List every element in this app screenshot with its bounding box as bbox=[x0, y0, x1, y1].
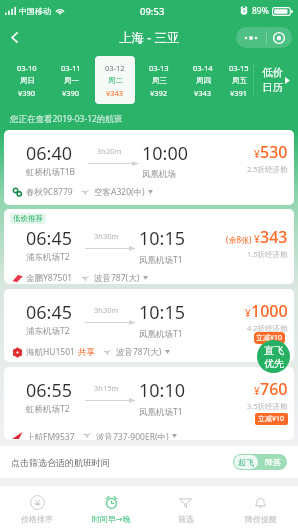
button[interactable]: 低价推荐 bbox=[4, 209, 294, 284]
staticText: 06:40 bbox=[26, 141, 73, 166]
staticText: 降落 bbox=[265, 457, 281, 467]
staticText: 凤凰机场T1 bbox=[139, 406, 183, 418]
staticText: 浦东机场T2 bbox=[26, 325, 70, 337]
staticText: 03-11 bbox=[61, 63, 81, 73]
staticText: (余8张) bbox=[226, 234, 252, 245]
staticText: ¥ bbox=[254, 384, 260, 398]
staticText: 优先 bbox=[264, 357, 284, 370]
staticText: 日历 bbox=[262, 81, 283, 94]
button[interactable]: 03-14 bbox=[183, 56, 223, 104]
staticText: 03-14 bbox=[193, 63, 213, 73]
staticText: 06:45 bbox=[26, 300, 73, 325]
button[interactable]: 筛选 bbox=[148, 486, 223, 529]
staticText: 中国移动 bbox=[19, 6, 51, 16]
staticText: ¥343 bbox=[194, 88, 212, 98]
staticText: 波音787(大) bbox=[94, 272, 140, 284]
staticText: 低价 bbox=[262, 66, 283, 79]
staticText: 1.5折经济舱 bbox=[247, 249, 288, 259]
button[interactable]: 更多 bbox=[242, 33, 260, 43]
button[interactable]: 返回 bbox=[0, 23, 28, 51]
button[interactable]: 03-13 bbox=[139, 56, 179, 104]
staticText: 3h15m bbox=[94, 383, 119, 393]
staticText: 03-13 bbox=[149, 63, 169, 73]
staticText: 10:00 bbox=[142, 141, 189, 166]
staticText: 1000 bbox=[251, 300, 288, 322]
staticText: ¥392 bbox=[150, 88, 168, 98]
button[interactable]: 03-10 bbox=[7, 56, 47, 104]
staticText: 春秋9C8779 bbox=[26, 186, 73, 198]
staticText: 直飞 bbox=[264, 344, 284, 357]
staticText: 周五 bbox=[232, 76, 247, 85]
staticText: 时间早→晚 bbox=[92, 514, 131, 524]
staticText: 03-10 bbox=[17, 63, 37, 73]
staticText: 您正在查看2019-03-12的航班 bbox=[10, 113, 123, 125]
staticText: 虹桥机场T1B bbox=[26, 166, 76, 178]
staticText: 波音787(大) bbox=[116, 346, 162, 358]
staticText: 起飞 bbox=[238, 457, 254, 467]
staticText: 上海 - 三亚 bbox=[119, 29, 180, 46]
staticText: 上航FM9537 bbox=[26, 431, 75, 440]
staticText: 周二 bbox=[108, 76, 123, 85]
staticText: 凤凰机场T1 bbox=[139, 328, 183, 340]
staticText: 3.5折经济舱 bbox=[247, 401, 288, 411]
button[interactable]: 03-15 bbox=[227, 56, 251, 104]
staticText: 共享 bbox=[78, 347, 95, 358]
staticText: ¥ bbox=[245, 306, 251, 320]
staticText: 530 bbox=[260, 141, 288, 163]
staticText: 立减¥10 bbox=[256, 333, 283, 343]
staticText: 3h30m bbox=[94, 305, 119, 315]
staticText: 89% bbox=[252, 5, 269, 17]
staticText: 10:10 bbox=[139, 378, 186, 403]
staticText: 价格排序 bbox=[21, 514, 53, 524]
staticText: ¥343 bbox=[106, 88, 124, 98]
staticText: ¥ bbox=[254, 232, 260, 246]
staticText: 点击筛选合适的航班时间 bbox=[11, 457, 110, 468]
staticText: 03-12 bbox=[105, 63, 125, 73]
button[interactable]: 06:45 bbox=[4, 289, 294, 362]
button[interactable]: 价格排序 bbox=[0, 486, 74, 529]
button[interactable]: 降价提醒 bbox=[223, 486, 298, 529]
button[interactable]: 关闭 bbox=[272, 31, 286, 45]
button[interactable]: 时间早→晚 bbox=[74, 486, 148, 529]
staticText: 低价推荐 bbox=[13, 214, 43, 223]
staticText: 凤凰机场T1 bbox=[139, 254, 183, 266]
staticText: 降价提醒 bbox=[245, 514, 277, 524]
staticText: 海航HU1501 bbox=[26, 346, 75, 358]
button[interactable]: 06:55 bbox=[4, 367, 294, 440]
staticText: 筛选 bbox=[178, 514, 194, 524]
button[interactable]: 03-12 bbox=[95, 56, 135, 104]
staticText: 金鹏Y87501 bbox=[26, 272, 73, 284]
staticText: 3h30m bbox=[94, 231, 119, 241]
button[interactable]: 低价 bbox=[254, 52, 298, 108]
staticText: 周一 bbox=[64, 76, 79, 85]
staticText: 06:55 bbox=[26, 378, 73, 403]
staticText: 09:53 bbox=[140, 5, 165, 18]
button[interactable]: 03-11 bbox=[51, 56, 91, 104]
staticText: 4.2折经济舱 bbox=[247, 323, 288, 333]
staticText: 周三 bbox=[152, 76, 167, 85]
staticText: 立减¥10 bbox=[258, 414, 285, 424]
staticText: ¥391 bbox=[230, 88, 248, 98]
staticText: 空客A320(中) bbox=[94, 186, 145, 198]
staticText: ¥ bbox=[254, 147, 260, 161]
button[interactable]: 起飞 bbox=[233, 454, 287, 470]
staticText: 06:45 bbox=[26, 226, 73, 251]
staticText: 周日 bbox=[20, 76, 35, 85]
button[interactable]: 直飞 bbox=[257, 340, 290, 373]
staticText: ¥390 bbox=[62, 88, 80, 98]
staticText: 2.5折经济舱 bbox=[247, 164, 288, 174]
staticText: 10:15 bbox=[139, 226, 186, 251]
staticText: 03-15 bbox=[229, 63, 249, 73]
staticText: ¥390 bbox=[18, 88, 36, 98]
staticText: 虹桥机场T2 bbox=[26, 403, 70, 415]
staticText: 周四 bbox=[196, 76, 211, 85]
staticText: 凤凰机场 bbox=[142, 169, 176, 180]
staticText: 波音737-900ER(中) bbox=[96, 431, 169, 440]
staticText: 3h20m bbox=[97, 146, 122, 156]
staticText: 760 bbox=[260, 378, 288, 400]
button[interactable]: 06:40 bbox=[4, 130, 294, 205]
staticText: 浦东机场T2 bbox=[26, 251, 70, 263]
staticText: 10:15 bbox=[139, 300, 186, 325]
staticText: 343 bbox=[260, 226, 288, 248]
